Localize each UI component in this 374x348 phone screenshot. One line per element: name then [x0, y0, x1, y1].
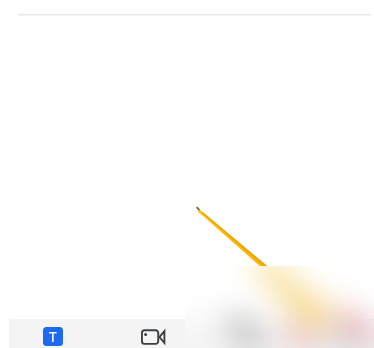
button[interactable]: Text formatting: [43, 327, 63, 346]
button[interactable]: Record video: [137, 320, 165, 348]
staticText: T: [49, 328, 57, 346]
